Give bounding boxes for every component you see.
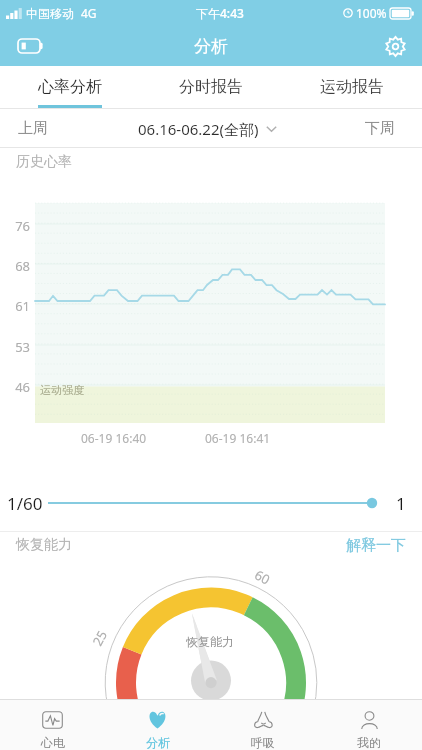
staticText: 100% (356, 5, 387, 21)
button[interactable]: 下周 (359, 112, 401, 145)
staticText: 我的 (357, 735, 381, 750)
button[interactable]: 分析 (105, 700, 210, 750)
staticText: 心电 (41, 735, 65, 750)
staticText: 分时报告 (179, 77, 243, 97)
staticText: 恢复能力 (16, 536, 72, 554)
staticText: 中国移动 (26, 6, 74, 21)
button[interactable]: 呼吸 (210, 700, 316, 750)
staticText: 68 (15, 257, 30, 275)
staticText: 运动报告 (320, 77, 384, 97)
button[interactable]: 心电 (0, 700, 105, 750)
staticText: 46 (15, 378, 30, 396)
staticText: 61 (15, 297, 30, 315)
button[interactable]: 心率分析 (0, 66, 140, 109)
staticText: 运动强度 (40, 383, 84, 397)
staticText: 心率分析 (38, 77, 102, 97)
staticText: 60 (252, 565, 273, 588)
button[interactable]: 上周 (12, 112, 54, 145)
staticText: 分析 (146, 735, 170, 750)
staticText: 上周 (18, 119, 48, 138)
staticText: 分析 (194, 36, 228, 57)
staticText: 1/60 (7, 492, 43, 515)
staticText: 恢复能力 (186, 634, 234, 649)
button[interactable]: Device battery (10, 31, 50, 61)
button[interactable]: 分时报告 (140, 66, 281, 109)
staticText: 4G (81, 5, 97, 21)
button[interactable]: 06.16-06.22(全部) (136, 113, 279, 145)
staticText: 下午4:43 (196, 5, 244, 21)
button[interactable]: Settings (378, 29, 412, 63)
staticText: 25 (88, 627, 111, 649)
staticText: 解释一下 (346, 536, 406, 555)
staticText: 76 (15, 217, 30, 235)
staticText: 1 (396, 492, 406, 515)
staticText: 呼吸 (251, 735, 275, 750)
button[interactable] (45, 490, 379, 516)
button[interactable]: 运动报告 (281, 66, 422, 109)
staticText: 53 (15, 338, 30, 356)
staticText: 下周 (365, 119, 395, 138)
staticText: 06.16-06.22(全部) (138, 119, 259, 139)
staticText: 06-19 16:40 (81, 430, 147, 446)
button[interactable]: 解释一下 (340, 531, 412, 560)
staticText: 历史心率 (16, 153, 72, 171)
button[interactable]: 我的 (316, 700, 422, 750)
staticText: 06-19 16:41 (205, 430, 271, 446)
